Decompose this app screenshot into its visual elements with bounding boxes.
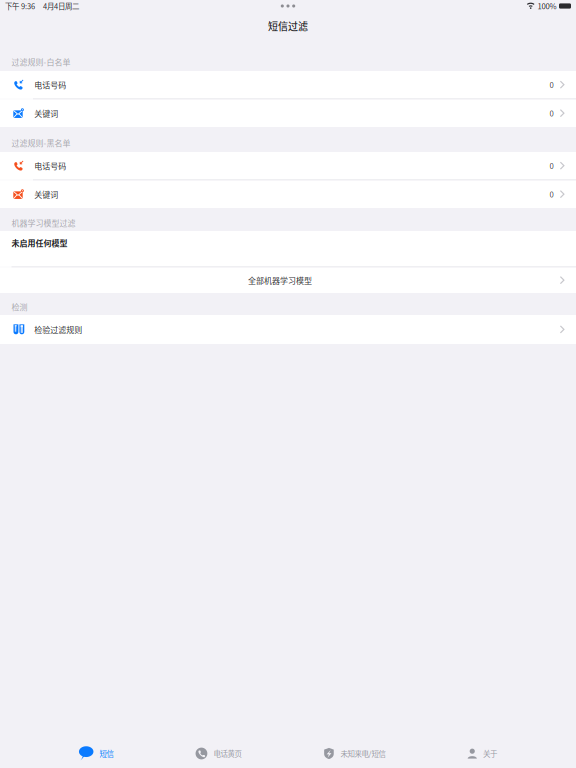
staticText: 0: [549, 79, 553, 90]
staticText: 未启用任何模型: [11, 237, 67, 249]
staticText: 0: [549, 108, 553, 119]
button[interactable]: 关键词: [0, 180, 576, 208]
staticText: 关键词: [34, 107, 58, 119]
button[interactable]: 全部机器学习模型: [0, 267, 576, 293]
staticText: 下午 9:36 4月4日周二: [5, 1, 79, 11]
button[interactable]: 检验过滤规则: [0, 315, 576, 344]
staticText: 100%: [537, 0, 556, 12]
staticText: 短信: [99, 748, 113, 759]
staticText: 电话黄页: [213, 748, 241, 759]
button[interactable]: 电话黄页: [195, 739, 241, 767]
staticText: 电话号码: [34, 79, 66, 91]
staticText: 机器学习模型过滤: [11, 217, 75, 229]
staticText: 检测: [11, 301, 27, 313]
staticText: 0: [549, 189, 553, 200]
button[interactable]: 电话号码: [0, 71, 576, 98]
button[interactable]: 短信: [79, 739, 113, 767]
button[interactable]: 关于: [467, 739, 497, 767]
staticText: 未知来电/短信: [340, 748, 385, 759]
staticText: 过滤规则-白名单: [11, 56, 70, 68]
staticText: 电话号码: [34, 160, 66, 172]
staticText: 全部机器学习模型: [248, 274, 312, 286]
staticText: 关键词: [34, 188, 58, 200]
button[interactable]: 电话号码: [0, 152, 576, 179]
button[interactable]: 关键词: [0, 99, 576, 127]
staticText: 检验过滤规则: [34, 324, 82, 335]
staticText: 短信过滤: [268, 19, 308, 33]
button[interactable]: 未知来电/短信: [323, 739, 385, 767]
staticText: 0: [549, 160, 553, 171]
staticText: 过滤规则-黑名单: [11, 137, 70, 149]
staticText: 关于: [483, 748, 497, 759]
